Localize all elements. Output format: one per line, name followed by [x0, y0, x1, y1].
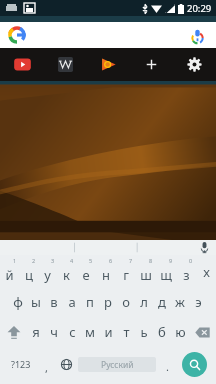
button[interactable]: 3 — [38, 257, 57, 287]
staticText: у — [44, 266, 51, 284]
staticText: ю — [175, 323, 186, 341]
button[interactable]: я — [27, 317, 45, 347]
button[interactable]: YouTube — [0, 48, 44, 81]
button[interactable]: ч — [45, 317, 63, 347]
button[interactable]: э — [189, 287, 207, 317]
staticText: х — [203, 263, 210, 281]
staticText: р — [104, 293, 112, 311]
staticText: в — [50, 293, 58, 311]
button[interactable]: р — [99, 287, 117, 317]
button[interactable]: 9 — [156, 257, 176, 287]
staticText: г — [123, 266, 129, 284]
button[interactable]: Backspace — [189, 317, 216, 347]
button[interactable]: м — [81, 317, 99, 347]
button[interactable]: х — [196, 257, 216, 287]
staticText: д — [158, 293, 166, 311]
staticText: я — [32, 323, 40, 341]
button[interactable]: Voice search — [187, 25, 207, 45]
button[interactable]: . — [158, 347, 177, 381]
button[interactable]: Shift — [0, 317, 27, 347]
staticText: 20:29 — [187, 2, 212, 15]
staticText: ш — [140, 266, 152, 284]
staticText: . — [166, 359, 169, 374]
staticText: а — [68, 293, 76, 311]
button[interactable]: Voice input — [192, 240, 216, 255]
staticText: 1 — [13, 257, 17, 264]
button[interactable]: 5 — [76, 257, 96, 287]
button[interactable]: Русский — [78, 357, 156, 372]
button[interactable]: ю — [171, 317, 189, 347]
staticText: и — [104, 323, 113, 341]
staticText: м — [85, 323, 95, 341]
staticText: щ — [160, 266, 172, 284]
button[interactable]: п — [81, 287, 99, 317]
staticText: 4 — [70, 257, 74, 264]
button[interactable]: Add shortcut — [130, 48, 173, 81]
button[interactable]: Settings — [173, 48, 216, 81]
staticText: 5 — [89, 257, 93, 264]
staticText: 7 — [129, 257, 133, 264]
button[interactable]: ф — [9, 287, 27, 317]
staticText: й — [5, 266, 14, 284]
staticText: л — [140, 293, 148, 311]
staticText: б — [158, 323, 166, 341]
staticText: к — [63, 266, 70, 284]
button[interactable]: 4 — [57, 257, 76, 287]
staticText: е — [82, 266, 90, 284]
button[interactable]: , — [37, 347, 56, 381]
staticText: ч — [50, 323, 58, 341]
button[interactable]: а — [63, 287, 81, 317]
button[interactable]: ь — [135, 317, 153, 347]
button[interactable]: б — [153, 317, 171, 347]
button[interactable]: ы — [27, 287, 45, 317]
staticText: ы — [31, 293, 41, 311]
staticText: ?123 — [11, 358, 31, 370]
staticText: э — [195, 293, 202, 311]
button[interactable]: ж — [171, 287, 189, 317]
button[interactable]: д — [153, 287, 171, 317]
button[interactable]: 8 — [136, 257, 156, 287]
staticText: 2 — [32, 257, 36, 264]
button[interactable]: т — [117, 317, 135, 347]
button[interactable]: л — [135, 287, 153, 317]
button[interactable]: 0 — [176, 257, 196, 287]
staticText: ф — [13, 293, 23, 311]
staticText: п — [86, 293, 94, 311]
button[interactable]: Wikipedia — [44, 48, 87, 81]
button[interactable]: ?123 — [4, 347, 37, 381]
staticText: з — [183, 266, 190, 284]
staticText: , — [45, 360, 48, 375]
staticText: 0 — [189, 257, 193, 264]
staticText: 3 — [51, 257, 55, 264]
staticText: ь — [140, 323, 148, 341]
staticText: н — [102, 266, 110, 284]
button[interactable]: 6 — [96, 257, 116, 287]
staticText: о — [122, 293, 130, 311]
button[interactable]: Voice search — [0, 22, 216, 48]
staticText: 6 — [109, 257, 113, 264]
button[interactable]: о — [117, 287, 135, 317]
staticText: 8 — [149, 257, 153, 264]
button[interactable]: 1 — [0, 257, 19, 287]
staticText: Русский — [101, 359, 134, 371]
button[interactable]: и — [99, 317, 117, 347]
staticText: т — [123, 323, 130, 341]
button[interactable]: 2 — [19, 257, 38, 287]
button[interactable]: 7 — [116, 257, 136, 287]
button[interactable]: Search — [177, 347, 212, 381]
button[interactable]: с — [63, 317, 81, 347]
staticText: с — [69, 323, 76, 341]
staticText: ж — [175, 293, 185, 311]
button[interactable]: Play — [87, 48, 130, 81]
staticText: 9 — [169, 257, 173, 264]
button[interactable]: в — [45, 287, 63, 317]
staticText: ц — [25, 266, 33, 284]
button[interactable]: Change language — [56, 347, 76, 381]
